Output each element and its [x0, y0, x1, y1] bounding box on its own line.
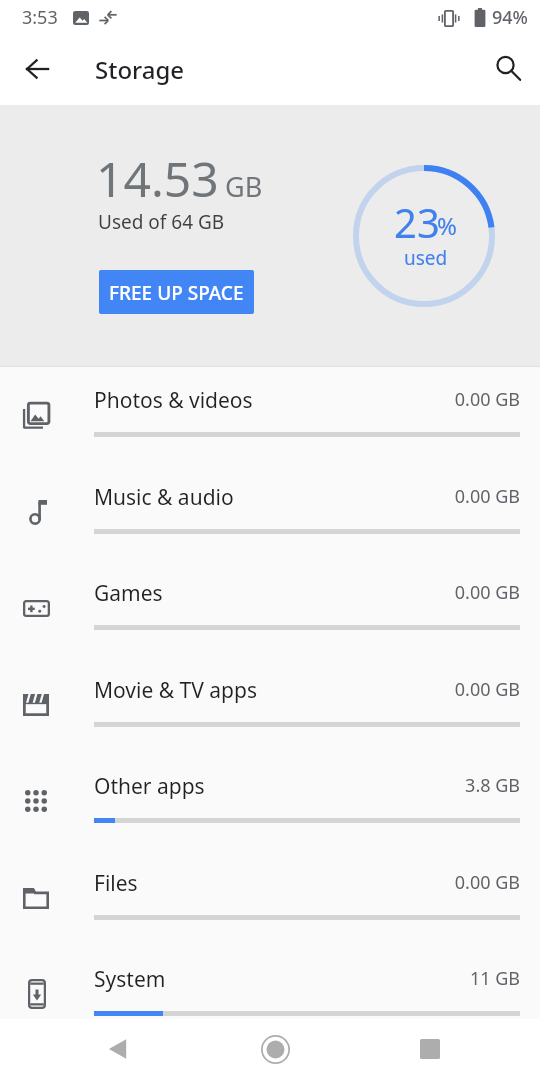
staticText: 3:53 [22, 5, 58, 30]
staticText: GB [225, 168, 263, 205]
staticText: 0.00 GB [320, 580, 520, 605]
staticText: Storage [95, 53, 185, 86]
staticText: Movie & TV apps [94, 676, 257, 705]
staticText: Used of 64 GB [98, 209, 225, 235]
staticText: FREE UP SPACE [109, 280, 244, 306]
staticText: Other apps [94, 772, 205, 801]
button[interactable]: Music & audio [0, 468, 540, 564]
staticText: 0.00 GB [320, 387, 520, 412]
staticText: % [437, 209, 457, 242]
staticText: 3.8 GB [320, 773, 520, 798]
button[interactable]: Photos & videos [0, 371, 540, 467]
button[interactable]: Movie & TV apps [0, 661, 540, 757]
staticText: Photos & videos [94, 386, 253, 415]
staticText: 0.00 GB [320, 870, 520, 895]
staticText: Files [94, 869, 138, 898]
staticText: 0.00 GB [320, 484, 520, 509]
staticText: used [404, 245, 448, 271]
button[interactable]: FREE UP SPACE [99, 270, 254, 314]
button[interactable]: Other apps [0, 757, 540, 853]
button[interactable]: Navigate up [9, 41, 65, 97]
button[interactable]: Home [245, 1019, 305, 1079]
staticText: Music & audio [94, 483, 234, 512]
button[interactable]: System [0, 950, 540, 1046]
staticText: 14.53 [96, 146, 219, 211]
button[interactable]: Games [0, 564, 540, 660]
button[interactable]: Files [0, 854, 540, 950]
staticText: 11 GB [320, 966, 520, 991]
staticText: System [94, 965, 166, 994]
staticText: 0.00 GB [320, 677, 520, 702]
button[interactable]: Search [480, 40, 536, 96]
button[interactable]: Back [89, 1019, 149, 1079]
button[interactable]: Recent apps [400, 1019, 460, 1079]
staticText: 23 [394, 195, 440, 249]
staticText: Games [94, 579, 163, 608]
staticText: 94% [492, 5, 528, 30]
